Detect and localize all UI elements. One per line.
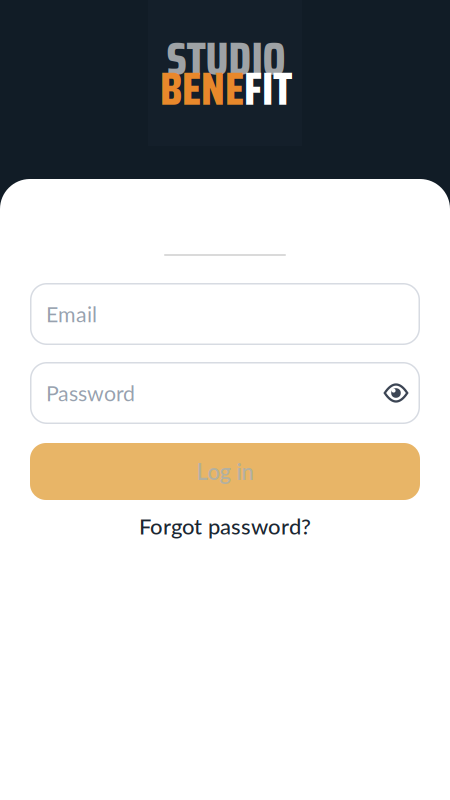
staticText: STUDIO bbox=[166, 23, 285, 95]
staticText: FIT bbox=[244, 53, 292, 125]
staticText: Log in bbox=[196, 458, 253, 485]
button[interactable]: Forgot password? bbox=[139, 513, 311, 539]
button[interactable]: Password bbox=[30, 362, 420, 424]
staticText: Email bbox=[46, 301, 97, 327]
staticText: BENE bbox=[160, 53, 244, 125]
button[interactable]: Email bbox=[30, 283, 420, 345]
staticText: Forgot password? bbox=[139, 513, 311, 539]
staticText: Password bbox=[46, 380, 135, 406]
button[interactable]: Log in bbox=[30, 443, 420, 500]
